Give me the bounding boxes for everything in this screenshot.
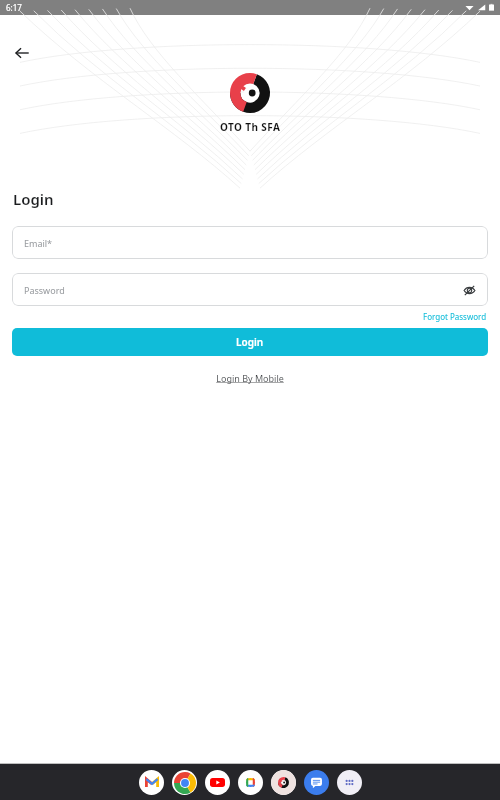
staticText: Forgot Password (423, 311, 487, 322)
button[interactable]: YouTube (205, 770, 230, 795)
staticText: Login (236, 335, 264, 349)
button[interactable]: Gmail (139, 770, 164, 795)
button[interactable]: Messages (304, 770, 329, 795)
button[interactable]: Photos (238, 770, 263, 795)
button[interactable]: OTO Th SFA (271, 770, 296, 795)
staticText: Email* (24, 237, 53, 249)
button[interactable]: Back (6, 37, 38, 69)
staticText: Password (24, 284, 65, 296)
button[interactable]: Forgot Password (423, 311, 487, 322)
staticText: Login By Mobile (216, 372, 284, 384)
button[interactable]: All apps (337, 770, 362, 795)
staticText: OTO Th SFA (220, 120, 281, 134)
button[interactable]: Login (12, 328, 488, 356)
staticText: 6:17 (6, 2, 22, 13)
button[interactable]: Show password (458, 279, 480, 301)
button[interactable]: Login By Mobile (210, 370, 290, 386)
staticText: Login (13, 189, 54, 209)
button[interactable]: Chrome (172, 770, 197, 795)
button[interactable]: Password (12, 273, 488, 306)
button[interactable]: Email* (12, 226, 488, 259)
